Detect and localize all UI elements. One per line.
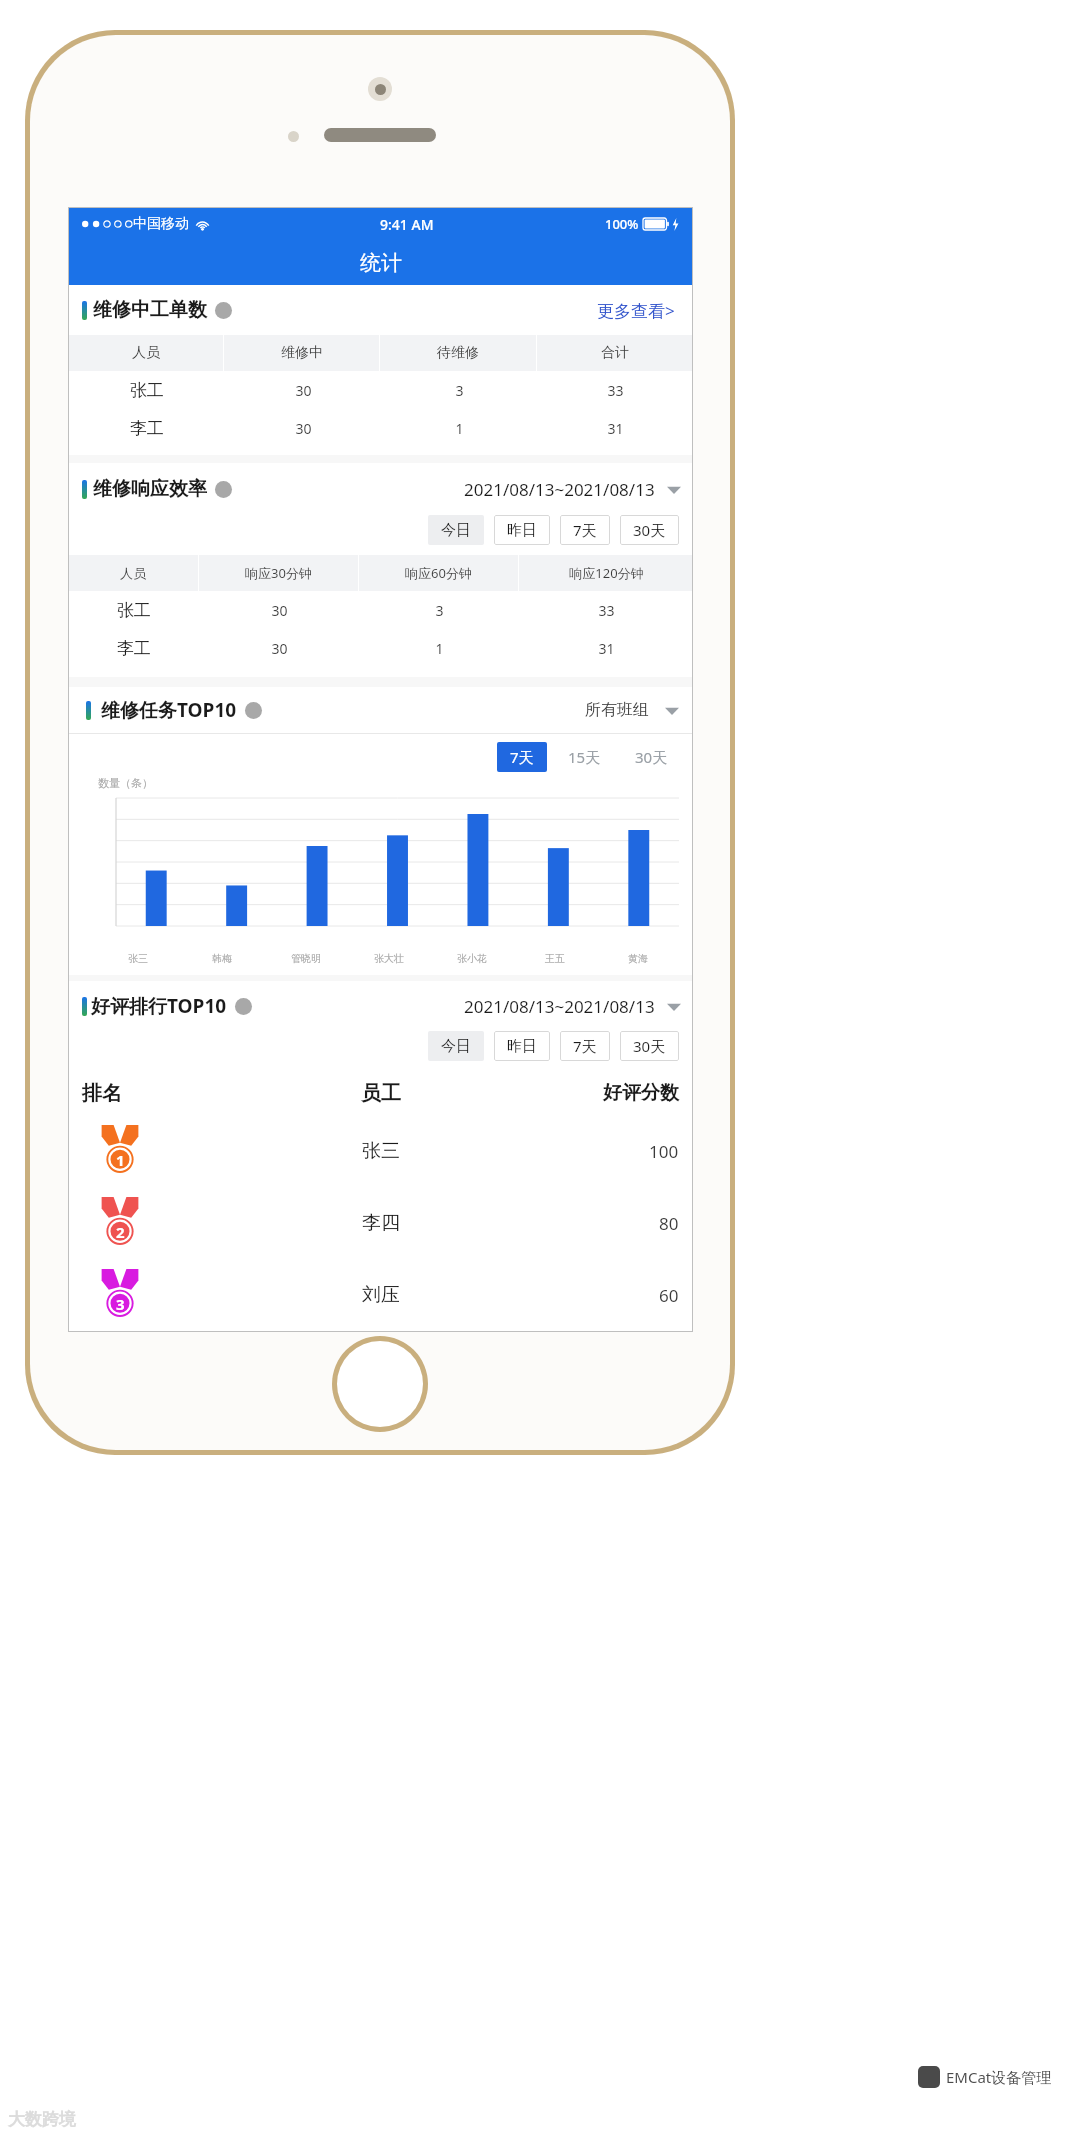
staticText: 昨日 <box>507 521 537 540</box>
staticText: 李四 <box>362 1211 400 1235</box>
staticText: 更多查看> <box>597 299 675 322</box>
staticText: 30 <box>271 639 288 658</box>
staticText: 3 <box>455 381 464 400</box>
button[interactable]: 1 <box>68 1115 693 1187</box>
staticText: 维修中 <box>281 344 323 362</box>
button[interactable]: 15天 <box>555 742 614 772</box>
staticText: 好评分数 <box>603 1081 679 1105</box>
button[interactable]: 7天 <box>497 742 547 772</box>
staticText: 所有班组 <box>585 700 649 720</box>
staticText: 人员 <box>132 344 160 362</box>
staticText: 7天 <box>573 520 597 540</box>
staticText: 100 <box>649 1140 679 1163</box>
button[interactable]: 2021/08/13~2021/08/13 <box>464 995 681 1018</box>
staticText: 大数跨境 <box>8 2109 76 2130</box>
staticText: 2 <box>116 1222 125 1242</box>
button[interactable]: 30天 <box>622 742 681 772</box>
staticText: 33 <box>598 601 615 620</box>
staticText: 15天 <box>568 747 601 767</box>
button[interactable]: 更多查看> <box>593 295 679 326</box>
staticText: 人员 <box>120 565 146 581</box>
staticText: 黄海 <box>628 952 648 965</box>
button[interactable]: 所有班组 <box>585 700 679 720</box>
staticText: 中国移动 <box>133 215 189 233</box>
staticText: 2021/08/13~2021/08/13 <box>464 478 655 501</box>
staticText: 张小花 <box>457 952 487 965</box>
button[interactable]: 7天 <box>560 1031 610 1061</box>
staticText: 1 <box>455 419 464 438</box>
staticText: 待维修 <box>437 344 479 362</box>
staticText: 响应30分钟 <box>245 564 312 582</box>
staticText: 好评排行TOP10 <box>91 993 227 1019</box>
button[interactable]: 30天 <box>620 515 679 545</box>
staticText: 1 <box>116 1150 125 1170</box>
staticText: 响应120分钟 <box>569 564 644 582</box>
button[interactable]: 今日 <box>428 1031 484 1061</box>
button[interactable]: 2021/08/13~2021/08/13 <box>464 478 681 501</box>
button[interactable]: 昨日 <box>494 1031 550 1061</box>
staticText: 100% <box>605 215 639 233</box>
staticText: 31 <box>607 419 624 438</box>
staticText: 昨日 <box>507 1037 537 1056</box>
staticText: EMCat设备管理 <box>946 2067 1052 2087</box>
staticText: 维修任务TOP10 <box>101 697 237 723</box>
staticText: 韩梅 <box>212 952 232 965</box>
button[interactable]: 30天 <box>620 1031 679 1061</box>
staticText: 王五 <box>545 952 565 965</box>
staticText: 维修响应效率 <box>93 477 207 501</box>
button[interactable]: 今日 <box>428 515 484 545</box>
staticText: 张工 <box>117 600 151 621</box>
staticText: 31 <box>598 639 615 658</box>
staticText: 今日 <box>441 1037 471 1056</box>
staticText: 响应60分钟 <box>405 564 472 582</box>
staticText: 7天 <box>573 1036 597 1056</box>
button[interactable]: 7天 <box>560 515 610 545</box>
staticText: 2021/08/13~2021/08/13 <box>464 995 655 1018</box>
staticText: 7天 <box>510 747 534 767</box>
staticText: 30 <box>271 601 288 620</box>
staticText: 3 <box>435 601 444 620</box>
staticText: 张工 <box>130 380 164 401</box>
staticText: 统计 <box>360 250 402 276</box>
staticText: 9:41 AM <box>380 215 434 234</box>
staticText: 张三 <box>128 952 148 965</box>
staticText: 管晓明 <box>291 952 321 965</box>
staticText: 张大壮 <box>374 952 404 965</box>
button[interactable]: 2 <box>68 1187 693 1259</box>
staticText: 员工 <box>361 1081 401 1106</box>
staticText: 30 <box>295 381 312 400</box>
staticText: 30 <box>295 419 312 438</box>
staticText: 30天 <box>633 1036 666 1056</box>
staticText: 33 <box>607 381 624 400</box>
staticText: 李工 <box>117 638 151 659</box>
staticText: 80 <box>659 1212 679 1235</box>
button[interactable]: 昨日 <box>494 515 550 545</box>
staticText: 1 <box>435 639 444 658</box>
button[interactable]: Home <box>332 1336 428 1432</box>
staticText: 今日 <box>441 521 471 540</box>
staticText: 3 <box>116 1294 125 1314</box>
staticText: 30天 <box>633 520 666 540</box>
staticText: 张三 <box>362 1139 400 1163</box>
staticText: 30天 <box>635 747 668 767</box>
staticText: 李工 <box>130 418 164 439</box>
staticText: 合计 <box>601 344 629 362</box>
staticText: 维修中工单数 <box>93 298 207 322</box>
staticText: 刘压 <box>362 1283 400 1307</box>
staticText: 数量（条） <box>98 776 153 790</box>
staticText: 排名 <box>82 1081 122 1106</box>
button[interactable]: 3 <box>68 1259 693 1331</box>
staticText: 60 <box>659 1284 679 1307</box>
